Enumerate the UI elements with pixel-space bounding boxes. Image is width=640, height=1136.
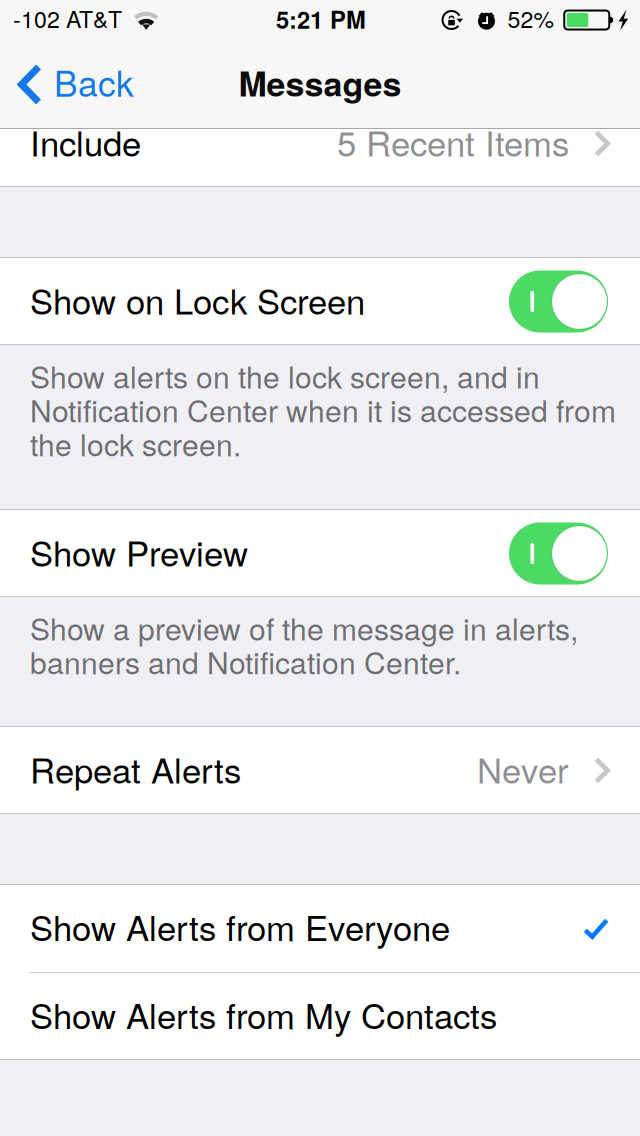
staticText: Never bbox=[477, 744, 569, 793]
button[interactable]: Show on Lock Screen bbox=[509, 270, 608, 332]
button[interactable]: Show Alerts from Everyone bbox=[0, 885, 640, 972]
staticText: -102 AT&T bbox=[13, 1, 122, 34]
staticText: Messages bbox=[238, 58, 401, 107]
staticText: Show Alerts from Everyone bbox=[30, 901, 450, 951]
button[interactable]: Repeat Alerts bbox=[0, 727, 640, 814]
button[interactable]: Show Alerts from My Contacts bbox=[0, 973, 640, 1060]
staticText: Show alerts on the lock screen, and in N… bbox=[30, 358, 616, 460]
staticText: 52% bbox=[507, 1, 554, 34]
staticText: 5 Recent Items bbox=[337, 117, 569, 166]
staticText: Repeat Alerts bbox=[30, 744, 241, 793]
button[interactable]: Include bbox=[0, 129, 640, 187]
button[interactable]: Back bbox=[0, 40, 148, 128]
staticText: Show a preview of the message in alerts,… bbox=[30, 610, 578, 678]
staticText: Show Alerts from My Contacts bbox=[30, 989, 497, 1039]
staticText: Include bbox=[30, 117, 141, 166]
staticText: Show Preview bbox=[30, 527, 248, 576]
staticText: 5:21 PM bbox=[276, 2, 366, 36]
staticText: Back bbox=[54, 56, 134, 107]
button[interactable]: Show Preview bbox=[509, 522, 608, 584]
staticText: Show on Lock Screen bbox=[30, 275, 365, 324]
